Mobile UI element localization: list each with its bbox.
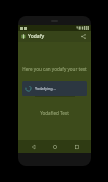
button[interactable]: Home [48, 140, 61, 153]
button[interactable]: Recents [70, 140, 83, 153]
staticText: Yodafied Text [40, 110, 69, 116]
button[interactable]: Share [79, 32, 88, 41]
staticText: Yodafy [28, 33, 45, 40]
staticText: Yodafying... [35, 86, 56, 91]
staticText: Here you can yodafy your text [22, 66, 87, 72]
button[interactable]: Back [27, 140, 40, 153]
button[interactable]: Yodafying... [22, 81, 87, 96]
